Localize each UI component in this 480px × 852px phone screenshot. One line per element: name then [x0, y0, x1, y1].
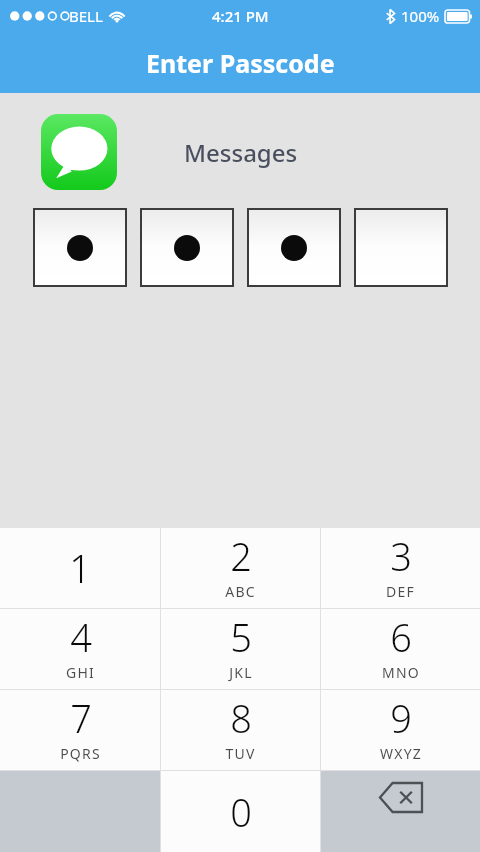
staticText: 2 — [230, 530, 252, 582]
staticText: 0 — [230, 786, 252, 838]
staticText: 4 — [70, 611, 92, 663]
staticText: JKL — [229, 663, 253, 682]
button[interactable]: 8 — [161, 690, 320, 770]
staticText: DEF — [386, 582, 415, 601]
button[interactable]: Delete — [321, 771, 480, 852]
staticText: MNO — [382, 663, 420, 682]
button[interactable]: 2 — [161, 528, 320, 608]
staticText: 7 — [70, 692, 92, 744]
button[interactable]: 7 — [0, 690, 160, 770]
staticText: GHI — [66, 663, 95, 682]
staticText: WXYZ — [380, 744, 422, 763]
staticText: TUV — [225, 744, 256, 763]
staticText: 6 — [390, 611, 412, 663]
staticText: BELL — [69, 6, 103, 26]
button[interactable]: 4 — [0, 609, 160, 689]
button[interactable]: 3 — [321, 528, 480, 608]
button[interactable]: 1 — [0, 528, 160, 608]
staticText: PQRS — [60, 744, 101, 763]
staticText: Messages — [184, 136, 298, 169]
button[interactable]: 5 — [161, 609, 320, 689]
staticText: ABC — [225, 582, 256, 601]
staticText: Enter Passcode — [146, 46, 335, 80]
staticText: 100% — [401, 6, 440, 26]
staticText: 3 — [390, 530, 412, 582]
staticText: 1 — [69, 542, 91, 594]
staticText: 4:21 PM — [212, 6, 269, 26]
button[interactable]: 0 — [161, 771, 320, 852]
staticText: 9 — [390, 692, 412, 744]
staticText: 8 — [230, 692, 252, 744]
staticText: 5 — [230, 611, 252, 663]
button[interactable]: 9 — [321, 690, 480, 770]
button[interactable]: 6 — [321, 609, 480, 689]
